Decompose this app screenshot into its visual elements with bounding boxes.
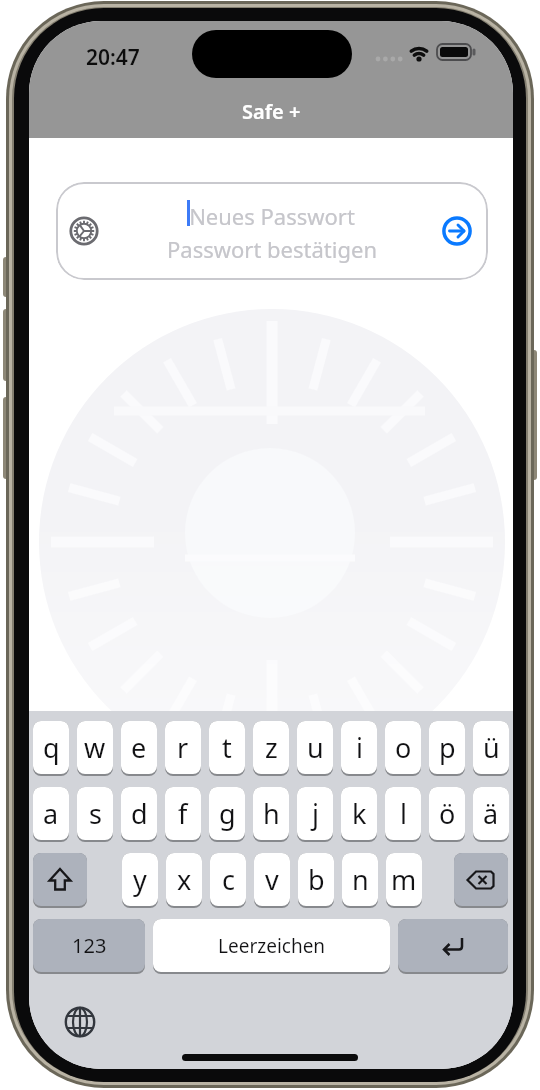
button[interactable]: j (297, 787, 333, 840)
staticText: ä (483, 795, 499, 832)
button[interactable]: k (341, 787, 377, 840)
staticText: b (308, 861, 325, 898)
button[interactable]: f (165, 787, 201, 840)
staticText: Neues Passwort (56, 201, 488, 231)
button[interactable]: w (77, 721, 113, 774)
staticText: d (131, 795, 148, 832)
button[interactable]: e (121, 721, 157, 774)
staticText: f (178, 795, 188, 832)
staticText: a (43, 795, 59, 832)
button[interactable]: b (298, 853, 334, 906)
staticText: g (219, 795, 236, 832)
button[interactable] (442, 216, 472, 246)
button[interactable]: x (166, 853, 202, 906)
staticText: ö (439, 795, 456, 832)
button[interactable]: p (429, 721, 465, 774)
button[interactable]: n (342, 853, 378, 906)
staticText: h (263, 795, 280, 832)
staticText: Safe + (242, 98, 301, 125)
button[interactable]: t (209, 721, 245, 774)
staticText: y (133, 861, 147, 898)
button[interactable] (33, 853, 87, 906)
button[interactable]: h (253, 787, 289, 840)
button[interactable]: ü (473, 721, 509, 774)
button[interactable]: Neues Passwort (56, 182, 488, 280)
staticText: r (177, 729, 189, 766)
button[interactable]: s (77, 787, 113, 840)
button[interactable]: c (210, 853, 246, 906)
button[interactable] (454, 853, 508, 906)
staticText: 20:47 (86, 43, 140, 72)
staticText: p (439, 729, 456, 766)
button[interactable] (64, 1006, 96, 1038)
button[interactable]: Leerzeichen (153, 919, 390, 972)
staticText: x (177, 861, 192, 898)
staticText: Passwort bestätigen (56, 234, 488, 264)
button[interactable]: m (386, 853, 422, 906)
staticText: c (222, 861, 235, 898)
staticText: v (265, 861, 279, 898)
button[interactable]: v (254, 853, 290, 906)
staticText: m (391, 861, 417, 898)
staticText: w (84, 729, 106, 766)
staticText: n (352, 861, 369, 898)
button[interactable]: r (165, 721, 201, 774)
button[interactable]: z (253, 721, 289, 774)
button[interactable] (398, 919, 508, 972)
staticText: e (131, 729, 147, 766)
staticText: s (89, 795, 102, 832)
staticText: 123 (72, 932, 107, 959)
staticText: i (356, 729, 363, 766)
button[interactable]: g (209, 787, 245, 840)
staticText: k (352, 795, 367, 832)
staticText: z (265, 729, 278, 766)
button[interactable]: 123 (33, 919, 145, 972)
button[interactable]: y (122, 853, 158, 906)
button[interactable]: ä (473, 787, 509, 840)
staticText: o (395, 729, 412, 766)
button[interactable]: i (341, 721, 377, 774)
staticText: l (400, 795, 407, 832)
button[interactable]: a (33, 787, 69, 840)
button[interactable]: l (385, 787, 421, 840)
staticText: ü (483, 729, 500, 766)
staticText: j (312, 795, 319, 832)
staticText: Leerzeichen (218, 933, 326, 959)
staticText: t (222, 729, 232, 766)
button[interactable]: d (121, 787, 157, 840)
button[interactable]: q (33, 721, 69, 774)
button[interactable]: ö (429, 787, 465, 840)
staticText: u (307, 729, 324, 766)
button[interactable]: u (297, 721, 333, 774)
staticText: q (43, 729, 60, 766)
button[interactable]: o (385, 721, 421, 774)
